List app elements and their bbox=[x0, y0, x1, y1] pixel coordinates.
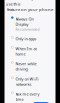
staticText: Choose how you want to use this bbox=[5, 0, 54, 7]
staticText: Only in apps bbox=[16, 36, 37, 41]
button[interactable]: Only in apps bbox=[11, 36, 49, 41]
button[interactable]: Ask me every time bbox=[11, 91, 49, 102]
button[interactable]: Only on Wi-Fi networks bbox=[11, 76, 49, 87]
staticText: Ask me every time bbox=[16, 91, 40, 102]
staticText: feature on your phone bbox=[7, 7, 53, 12]
button[interactable]: When I'm at home bbox=[11, 46, 49, 57]
button[interactable]: Continue bbox=[32, 102, 50, 103]
staticText: When I'm at home bbox=[16, 46, 37, 57]
button[interactable]: Never while driving bbox=[11, 61, 49, 72]
button[interactable]: Always On Display bbox=[11, 16, 49, 32]
staticText: Always On Display bbox=[16, 16, 34, 27]
staticText: Never while driving bbox=[16, 61, 37, 72]
staticText: Recommended bbox=[16, 27, 40, 32]
staticText: Only on Wi-Fi networks bbox=[16, 76, 39, 87]
